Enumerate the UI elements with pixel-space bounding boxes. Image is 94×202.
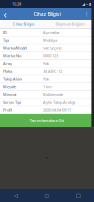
staticText: ◢ ⌁ ▮ [82,2,91,6]
staticText: 0000 123 [43,53,58,58]
staticText: 2020-04-04 09:11 [43,107,71,112]
staticText: Tipi [3,38,9,43]
button[interactable]: More options [83,8,90,20]
button[interactable]: Mesafe [0,83,94,91]
staticText: Marka/Model [3,45,27,51]
button[interactable]: Ekipman Bilgileri [47,20,94,28]
staticText: 34 ABC 12 [43,69,62,74]
button[interactable]: Plaka [0,68,94,75]
button[interactable]: Servis Tipi [0,99,94,106]
button[interactable]: Recent apps [63,189,94,202]
staticText: ‹ [3,7,6,21]
staticText: ID [3,30,7,35]
button[interactable]: ID [0,29,94,37]
button[interactable]: Marka/Model [0,44,94,52]
button[interactable]: Marka No [0,52,94,60]
button[interactable]: Tanımlamalara Git [0,114,94,127]
button[interactable]: Back [0,189,31,202]
staticText: Yok [43,61,49,66]
button[interactable]: Araç [0,60,94,68]
staticText: Ayrıntılar [43,30,60,35]
staticText: Ekipman Bilgileri [55,21,85,27]
staticText: 1 km [43,84,52,89]
staticText: ⋮ [84,11,89,17]
staticText: Takip Alanı [3,76,22,82]
staticText: Cihaz Bilgisi [12,21,34,27]
staticText: Servis Tipi [3,99,21,105]
staticText: □ [76,192,81,199]
button[interactable]: Back [0,8,10,20]
staticText: Plaka [3,69,12,74]
staticText: Mobilya [43,38,57,43]
button[interactable]: Tipi [0,37,94,44]
button[interactable]: Cihaz Bilgisi [0,20,47,28]
staticText: Cihaz Bilgisi [33,10,60,18]
staticText: ◁ [14,192,18,199]
staticText: Mesafe [3,84,16,89]
staticText: Araç [3,61,12,66]
button[interactable]: Home [31,189,63,202]
button[interactable]: Takip Alanı [0,75,94,83]
staticText: 15:28 [12,1,21,7]
staticText: ○ [44,192,49,199]
staticText: Tanımlamalara Git [29,118,64,123]
staticText: Yok [43,76,49,82]
button[interactable]: Profil [0,106,94,114]
staticText: Beklemede [43,92,63,97]
staticText: Mevcut [3,92,16,97]
staticText: Site Seçiniz [43,45,62,51]
staticText: Marka No [3,53,21,58]
button[interactable]: Mevcut [0,91,94,98]
staticText: Profil [3,107,12,112]
staticText: Aylık Takip Aralığı [43,99,75,105]
